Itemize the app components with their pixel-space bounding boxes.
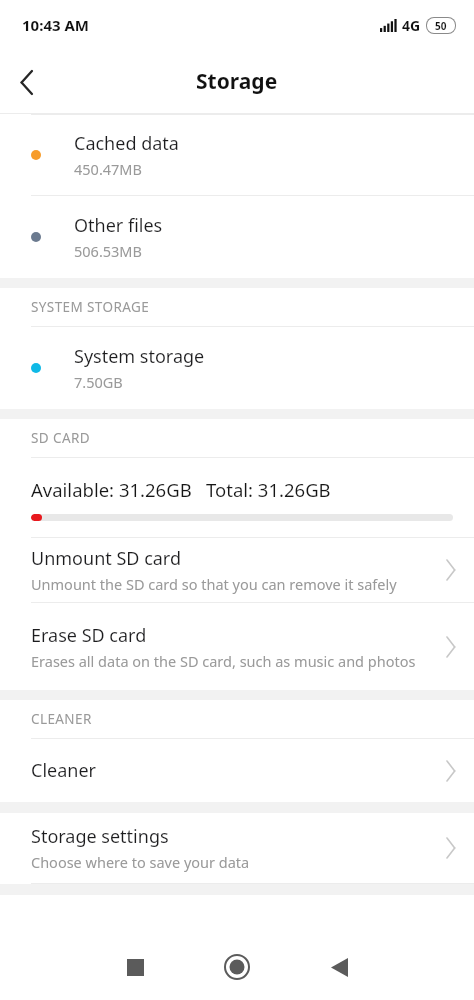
- staticText: 450.47MB: [74, 159, 142, 179]
- staticText: Available: 31.26GB Total: 31.26GB: [31, 477, 331, 502]
- button[interactable]: Cached data: [0, 115, 474, 195]
- staticText: Storage settings: [31, 824, 169, 849]
- staticText: Unmount the SD card so that you can remo…: [31, 574, 397, 594]
- staticText: 50: [435, 19, 447, 33]
- staticText: 10:43 AM: [22, 15, 89, 35]
- button[interactable]: Unmount SD card: [0, 538, 474, 602]
- staticText: SYSTEM STORAGE: [31, 298, 150, 316]
- staticText: SD CARD: [31, 429, 90, 447]
- staticText: Erases all data on the SD card, such as …: [31, 651, 416, 671]
- button[interactable]: Erase SD card: [0, 603, 474, 690]
- staticText: Cleaner: [31, 758, 96, 783]
- staticText: 506.53MB: [74, 241, 142, 261]
- staticText: Choose where to save your data: [31, 852, 250, 872]
- staticText: Unmount SD card: [31, 546, 182, 571]
- staticText: Erase SD card: [31, 623, 147, 648]
- staticText: Cached data: [74, 131, 179, 156]
- button[interactable]: Other files: [0, 196, 474, 278]
- button[interactable]: System storage: [0, 327, 474, 409]
- button[interactable]: Cleaner: [0, 739, 474, 802]
- staticText: Other files: [74, 213, 163, 238]
- staticText: 7.50GB: [74, 372, 123, 392]
- button[interactable]: Home: [186, 934, 288, 1000]
- staticText: 4G: [402, 16, 421, 35]
- button[interactable]: Back: [0, 56, 52, 108]
- button[interactable]: Storage settings: [0, 813, 474, 883]
- staticText: Storage: [196, 67, 278, 96]
- button[interactable]: Back: [288, 934, 390, 1000]
- button[interactable]: Recent apps: [84, 934, 186, 1000]
- staticText: CLEANER: [31, 710, 92, 728]
- staticText: System storage: [74, 344, 205, 369]
